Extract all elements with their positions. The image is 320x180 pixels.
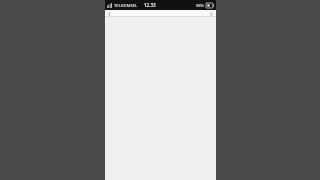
other: Battery 58 percent <box>206 3 214 8</box>
button[interactable]: Previous <box>107 10 112 17</box>
button[interactable] <box>112 10 209 17</box>
staticText: 58% <box>196 3 204 8</box>
button[interactable]: Next <box>209 10 214 17</box>
staticText: 12.33 <box>144 2 156 8</box>
staticText: TELKOMSEL <box>114 3 138 8</box>
other: Signal strength <box>107 3 112 8</box>
